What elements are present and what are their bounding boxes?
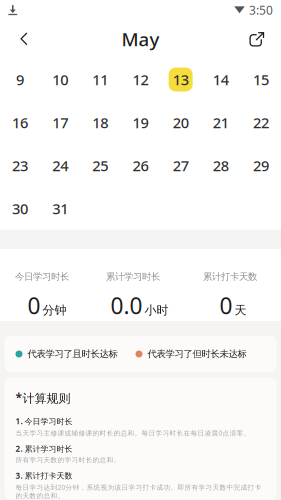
- staticText: May: [121, 27, 159, 51]
- staticText: 9: [16, 70, 24, 89]
- button[interactable]: 11: [80, 58, 120, 101]
- button[interactable]: 27: [161, 144, 201, 187]
- staticText: 代表学习了但时长未达标: [147, 348, 246, 360]
- staticText: 16: [12, 113, 28, 132]
- staticText: 累计学习时长: [106, 271, 160, 282]
- staticText: 0: [27, 290, 40, 321]
- staticText: 20: [173, 113, 189, 132]
- staticText: 27: [173, 156, 189, 175]
- button[interactable]: 23: [0, 144, 40, 187]
- button[interactable]: 10: [40, 58, 80, 101]
- staticText: 21: [213, 113, 229, 132]
- staticText: *计算规则: [15, 390, 70, 406]
- button[interactable]: Share: [241, 23, 273, 55]
- staticText: 18: [92, 113, 108, 132]
- staticText: 2. 累计学习时长: [15, 443, 72, 454]
- staticText: 15: [253, 70, 269, 89]
- button[interactable]: 13: [161, 58, 201, 101]
- staticText: 今日学习时长: [15, 271, 69, 282]
- button[interactable]: 19: [120, 101, 160, 144]
- staticText: 10: [52, 70, 68, 89]
- staticText: 11: [92, 70, 108, 89]
- staticText: 17: [52, 113, 68, 132]
- staticText: 30: [12, 199, 28, 218]
- button[interactable]: 26: [120, 144, 160, 187]
- button[interactable]: 16: [0, 101, 40, 144]
- staticText: 25: [92, 156, 108, 175]
- staticText: 所有学习天数的学习时长的总和。: [15, 456, 120, 464]
- button[interactable]: 12: [120, 58, 160, 101]
- staticText: 12: [132, 70, 148, 89]
- button[interactable]: 18: [80, 101, 120, 144]
- staticText: 0.0: [110, 290, 142, 321]
- staticText: 23: [12, 156, 28, 175]
- staticText: 29: [253, 156, 269, 175]
- staticText: 24: [52, 156, 68, 175]
- staticText: 累计打卡天数: [203, 271, 257, 282]
- staticText: 13: [173, 70, 189, 89]
- button[interactable]: 20: [161, 101, 201, 144]
- staticText: 0: [219, 290, 232, 321]
- button[interactable]: 29: [241, 144, 281, 187]
- button[interactable]: 22: [241, 101, 281, 144]
- button[interactable]: 25: [80, 144, 120, 187]
- staticText: 分钟: [42, 303, 66, 318]
- staticText: 26: [132, 156, 148, 175]
- button[interactable]: 15: [241, 58, 281, 101]
- staticText: 28: [213, 156, 229, 175]
- button[interactable]: 14: [201, 58, 241, 101]
- button[interactable]: 9: [0, 58, 40, 101]
- staticText: 当天学习主修课或辅修课的时长的总和。每日学习时长在每日凌晨0点清零。: [15, 429, 250, 437]
- staticText: 每日学习达到20分钟，系统视为该日学习打卡成功。即所有学习天数中完成打卡的天数的…: [15, 483, 261, 500]
- staticText: 代表学习了且时长达标: [27, 348, 117, 360]
- button[interactable]: 28: [201, 144, 241, 187]
- staticText: 小时: [144, 303, 168, 318]
- staticText: 31: [52, 199, 68, 218]
- button[interactable]: Back: [8, 23, 40, 55]
- button[interactable]: 31: [40, 187, 80, 230]
- staticText: 3. 累计打卡天数: [15, 470, 72, 481]
- staticText: 天: [234, 303, 246, 318]
- staticText: 14: [213, 70, 229, 89]
- staticText: 3:50: [249, 2, 273, 18]
- staticText: 1. 今日学习时长: [15, 416, 72, 426]
- button[interactable]: 30: [0, 187, 40, 230]
- button[interactable]: 17: [40, 101, 80, 144]
- button[interactable]: 21: [201, 101, 241, 144]
- staticText: 22: [253, 113, 269, 132]
- staticText: 19: [132, 113, 148, 132]
- button[interactable]: 24: [40, 144, 80, 187]
